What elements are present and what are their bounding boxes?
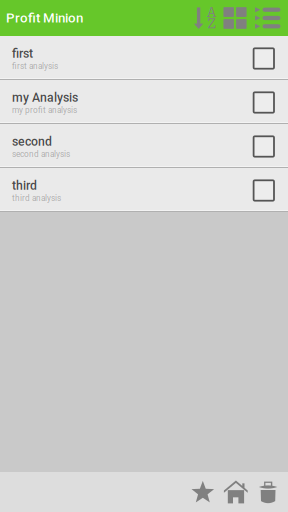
staticText: third (12, 178, 37, 193)
staticText: first analysis (12, 61, 58, 71)
button[interactable]: my Analysis (0, 80, 288, 122)
button[interactable]: Favorites (191, 480, 224, 504)
button[interactable]: Grid view (223, 7, 255, 29)
staticText: Z (207, 16, 216, 31)
button[interactable]: first (0, 36, 288, 78)
staticText: second (12, 134, 52, 149)
button[interactable]: third (0, 168, 288, 210)
staticText: my profit analysis (12, 105, 77, 115)
button[interactable]: Delete (259, 481, 277, 503)
button[interactable]: Home (224, 480, 259, 503)
staticText: first (12, 46, 33, 61)
button[interactable]: second (0, 124, 288, 166)
button[interactable]: List view (255, 7, 280, 29)
staticText: Profit Minion (6, 10, 83, 26)
staticText: third analysis (12, 193, 61, 203)
button[interactable]: Sort (194, 6, 223, 29)
staticText: A (207, 4, 217, 20)
staticText: my Analysis (12, 90, 78, 105)
staticText: second analysis (12, 149, 70, 159)
